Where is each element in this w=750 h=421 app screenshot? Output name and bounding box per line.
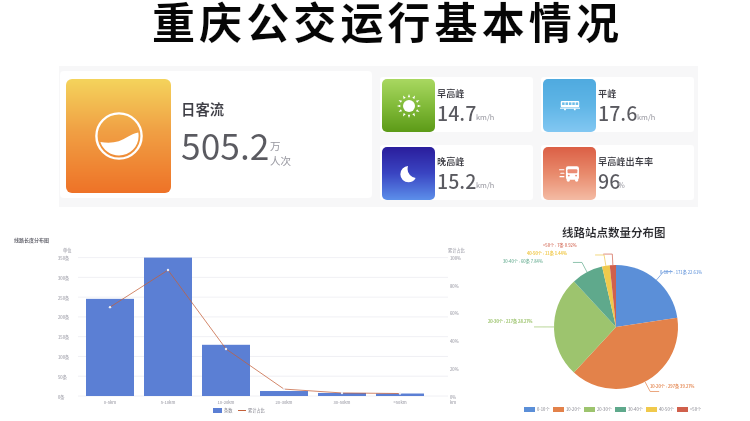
staticText: 线路站点数量分布图 — [562, 224, 666, 241]
staticText: 日客流 — [181, 98, 225, 119]
staticText: 14.7 — [437, 98, 477, 126]
staticText: 40% — [450, 338, 459, 344]
staticText: 20-30个 : 217条 28.27% — [488, 318, 533, 324]
staticText: 40-50个 : 11条 1.44% — [527, 250, 567, 256]
staticText: 60% — [450, 310, 459, 316]
staticText: 30-40个 — [628, 406, 643, 412]
staticText: 10-20km — [209, 399, 243, 405]
staticText: >50个 : 7条 0.92% — [543, 242, 577, 248]
staticText: 早高峰 — [437, 86, 465, 99]
staticText: 15.2 — [437, 166, 477, 194]
staticText: 30-40个 : 60条 7.84% — [503, 258, 543, 264]
button[interactable]: 早高峰 — [380, 77, 533, 132]
staticText: 0% — [450, 394, 457, 400]
staticText: 250条 — [58, 295, 70, 301]
staticText: 重庆公交运行基本情况 — [152, 0, 623, 51]
staticText: 20-30个 — [597, 406, 612, 412]
staticText: % — [618, 179, 625, 190]
staticText: km/h — [637, 111, 656, 122]
staticText: 100条 — [58, 354, 70, 360]
staticText: 20% — [450, 366, 459, 372]
staticText: 80% — [450, 283, 459, 289]
staticText: 10-20个 : 297条 39.27% — [650, 383, 695, 389]
staticText: 100% — [450, 255, 461, 261]
staticText: 50条 — [58, 374, 67, 380]
button[interactable]: 平峰 — [541, 77, 694, 132]
staticText: km/h — [476, 111, 495, 122]
button[interactable]: 晚高峰 — [380, 145, 533, 200]
staticText: 200条 — [58, 314, 70, 320]
staticText: 0条 — [58, 394, 65, 400]
staticText: 0-5km — [93, 399, 127, 405]
staticText: >50km — [383, 399, 417, 405]
staticText: 平峰 — [598, 86, 617, 99]
button[interactable]: 日客流 — [60, 71, 372, 198]
staticText: 线路长度分布图 — [14, 236, 50, 243]
staticText: 单位 — [63, 247, 72, 253]
staticText: 30-50km — [325, 399, 359, 405]
staticText: km/h — [476, 179, 495, 190]
staticText: 人次 — [270, 153, 291, 168]
staticText: >50个 — [690, 406, 702, 412]
staticText: 150条 — [58, 334, 70, 340]
staticText: 晚高峰 — [437, 154, 465, 167]
button[interactable]: 早高峰出车率 — [541, 145, 694, 200]
staticText: 累计占比 — [248, 407, 265, 413]
staticText: 96 — [598, 166, 621, 194]
staticText: 5-10km — [151, 399, 185, 405]
staticText: 累计占比 — [448, 247, 465, 253]
staticText: 350条 — [58, 255, 70, 261]
staticText: 条数 — [224, 407, 233, 413]
staticText: 20-30km — [267, 399, 301, 405]
staticText: 505.2 — [181, 119, 270, 170]
staticText: 300条 — [58, 275, 70, 281]
staticText: 10-20个 — [566, 406, 581, 412]
staticText: 40-50个 — [659, 406, 674, 412]
staticText: km — [450, 399, 457, 405]
staticText: 万 — [270, 138, 281, 153]
staticText: 17.6 — [598, 98, 638, 126]
staticText: 早高峰出车率 — [598, 154, 654, 167]
staticText: 0-10个 — [537, 406, 550, 412]
staticText: 0-10个 : 171条 22.61% — [660, 269, 703, 275]
